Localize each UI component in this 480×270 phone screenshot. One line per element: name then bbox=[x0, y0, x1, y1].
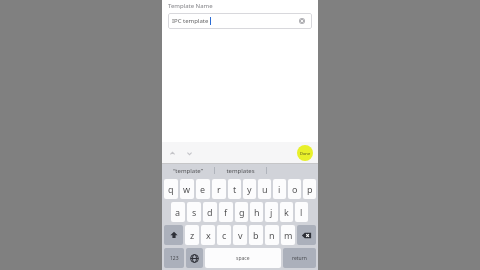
button[interactable]: 123 bbox=[164, 248, 184, 268]
staticText: p bbox=[307, 183, 313, 195]
button[interactable]: w bbox=[180, 179, 194, 199]
staticText: l bbox=[300, 206, 303, 218]
staticText: s bbox=[192, 206, 197, 218]
button[interactable]: templates bbox=[215, 164, 266, 177]
staticText: z bbox=[190, 229, 195, 241]
button[interactable]: h bbox=[250, 202, 263, 222]
staticText: v bbox=[238, 229, 243, 241]
staticText: n bbox=[269, 229, 275, 241]
button[interactable]: c bbox=[217, 225, 231, 245]
staticText: h bbox=[254, 206, 260, 218]
staticText: u bbox=[262, 183, 268, 195]
button[interactable]: y bbox=[243, 179, 256, 199]
staticText: a bbox=[175, 206, 181, 218]
button[interactable]: q bbox=[164, 179, 178, 199]
button[interactable]: o bbox=[288, 179, 301, 199]
button[interactable]: z bbox=[185, 225, 199, 245]
staticText: d bbox=[207, 206, 213, 218]
button[interactable]: Next field bbox=[182, 146, 196, 160]
button[interactable]: b bbox=[249, 225, 263, 245]
staticText: y bbox=[247, 183, 252, 195]
button[interactable]: space bbox=[205, 248, 281, 268]
staticText: space bbox=[236, 255, 250, 262]
staticText: r bbox=[217, 183, 221, 195]
button[interactable]: Shift bbox=[164, 225, 183, 245]
button[interactable]: s bbox=[187, 202, 201, 222]
staticText: q bbox=[168, 183, 174, 195]
button[interactable]: a bbox=[171, 202, 185, 222]
button[interactable]: return bbox=[283, 248, 316, 268]
button[interactable]: f bbox=[219, 202, 233, 222]
button[interactable]: Done bbox=[297, 145, 313, 161]
button[interactable]: d bbox=[203, 202, 217, 222]
staticText: f bbox=[224, 206, 228, 218]
staticText: m bbox=[284, 229, 293, 241]
staticText: b bbox=[253, 229, 259, 241]
button[interactable]: x bbox=[201, 225, 215, 245]
staticText: templates bbox=[226, 167, 255, 175]
button[interactable]: Clear text bbox=[296, 15, 308, 27]
button[interactable]: p bbox=[303, 179, 316, 199]
staticText: 123 bbox=[170, 255, 179, 262]
staticText: g bbox=[239, 206, 245, 218]
staticText: “template” bbox=[173, 167, 203, 175]
staticText: x bbox=[206, 229, 211, 241]
staticText: t bbox=[233, 183, 237, 195]
button[interactable]: l bbox=[295, 202, 308, 222]
button[interactable]: i bbox=[273, 179, 286, 199]
button[interactable]: Delete bbox=[297, 225, 316, 245]
staticText: Template Name bbox=[168, 2, 213, 10]
button[interactable]: k bbox=[280, 202, 293, 222]
button[interactable]: “template” bbox=[162, 164, 214, 177]
button[interactable]: r bbox=[212, 179, 226, 199]
button[interactable]: t bbox=[228, 179, 241, 199]
button[interactable]: n bbox=[265, 225, 279, 245]
button[interactable]: Switch keyboard bbox=[186, 248, 203, 268]
staticText: k bbox=[284, 206, 289, 218]
staticText: o bbox=[292, 183, 298, 195]
staticText: Done bbox=[300, 151, 311, 156]
staticText: IPC template bbox=[172, 17, 209, 25]
button[interactable]: Previous field bbox=[165, 146, 179, 160]
staticText: c bbox=[222, 229, 227, 241]
button[interactable]: e bbox=[196, 179, 210, 199]
staticText: w bbox=[183, 183, 191, 195]
button[interactable]: v bbox=[233, 225, 247, 245]
button[interactable]: g bbox=[235, 202, 248, 222]
staticText: e bbox=[200, 183, 206, 195]
staticText: return bbox=[292, 255, 307, 262]
button[interactable]: u bbox=[258, 179, 271, 199]
button[interactable]: j bbox=[265, 202, 278, 222]
staticText: i bbox=[278, 183, 281, 195]
staticText: j bbox=[270, 206, 273, 218]
button[interactable]: m bbox=[281, 225, 295, 245]
button[interactable]: IPC template bbox=[168, 13, 312, 29]
